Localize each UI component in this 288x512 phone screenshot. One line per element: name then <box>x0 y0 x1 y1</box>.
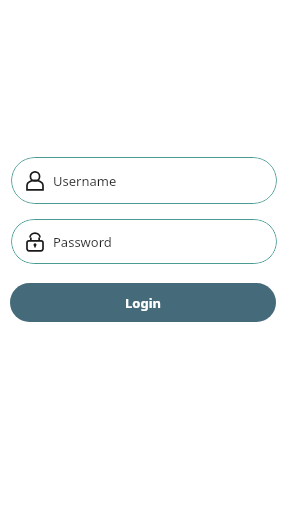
staticText: Password <box>53 233 112 251</box>
button[interactable]: Username <box>11 157 277 204</box>
staticText: Username <box>53 172 117 190</box>
button[interactable]: Login <box>10 283 276 322</box>
button[interactable]: Password <box>11 219 277 264</box>
staticText: Login <box>125 294 161 312</box>
